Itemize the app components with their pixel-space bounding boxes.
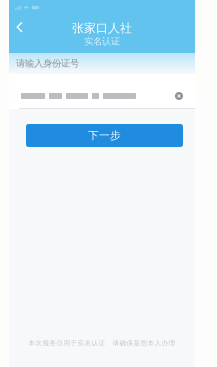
staticText: 请输入身份证号	[16, 58, 79, 69]
staticText: 实名认证	[84, 36, 120, 47]
staticText: 下一步	[88, 129, 121, 142]
button[interactable]: Back	[9, 13, 33, 55]
button[interactable]: 下一步	[26, 124, 183, 147]
staticText: 本次服务仅用于实名认证	[28, 339, 105, 347]
button[interactable]: Clear text	[172, 89, 186, 103]
staticText: 张家口人社	[72, 21, 132, 36]
staticText: 请确保是您本人办理	[112, 339, 175, 347]
